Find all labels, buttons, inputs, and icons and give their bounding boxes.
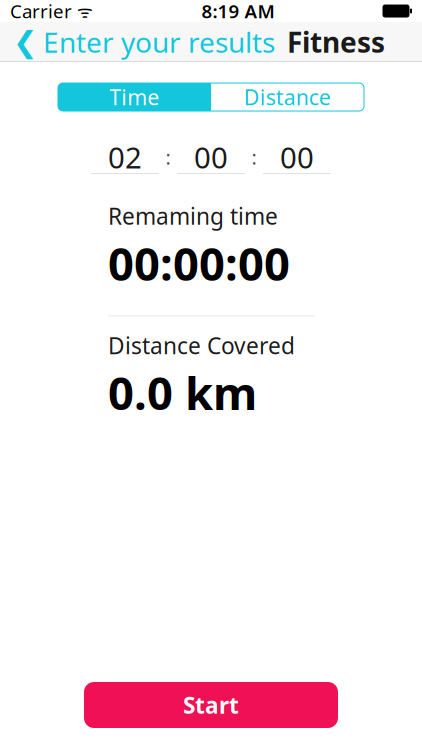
staticText: Start [183,690,239,720]
staticText: 0.0 km [108,362,257,423]
button[interactable]: 00 [263,144,331,174]
staticText: 00 [280,137,314,176]
button[interactable]: Start [84,682,338,728]
staticText: 02 [108,137,142,176]
staticText: ᯤ [72,0,93,22]
staticText: ❮ [13,25,38,59]
staticText: Fitness [287,23,385,61]
staticText: : [165,144,170,170]
button[interactable]: 00 [177,144,245,174]
staticText: Remaming time [108,201,278,231]
staticText: Enter your results [43,23,275,61]
staticText: Distance [244,83,331,111]
staticText: 00 [194,137,228,176]
staticText: Carrier [10,0,72,23]
button[interactable]: Distance [211,83,364,111]
staticText: : [251,144,256,170]
staticText: Time [109,83,159,111]
button[interactable]: Time [58,83,211,111]
staticText: 8:19 AM [201,0,274,23]
staticText: Distance Covered [108,330,295,360]
button[interactable]: ❮ [0,17,275,67]
staticText: 00:00:00 [108,233,290,293]
button[interactable]: 02 [91,144,159,174]
